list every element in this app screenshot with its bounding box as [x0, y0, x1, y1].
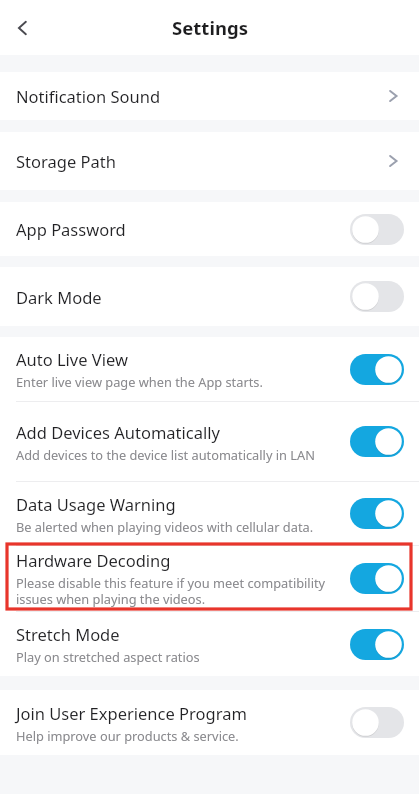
button[interactable]: Hardware Decoding	[0, 546, 419, 611]
button[interactable]: Join User Experience Program	[0, 690, 419, 755]
staticText: App Password	[16, 218, 126, 240]
staticText: Auto Live View	[16, 348, 128, 370]
button[interactable]: On	[350, 426, 404, 457]
staticText: Play on stretched aspect ratios	[16, 648, 200, 665]
staticText: Enter live view page when the App starts…	[16, 373, 263, 390]
staticText: Be alerted when playing videos with cell…	[16, 518, 314, 535]
button[interactable]: Data Usage Warning	[0, 482, 419, 545]
button[interactable]: App Password	[0, 202, 419, 256]
staticText: Add Devices Automatically	[16, 421, 220, 443]
staticText: Join User Experience Program	[16, 702, 247, 724]
button[interactable]: Stretch Mode	[0, 612, 419, 676]
button[interactable]: Add Devices Automatically	[0, 402, 419, 481]
button[interactable]: On	[350, 354, 404, 385]
other: Open	[382, 150, 404, 172]
button[interactable]: On	[350, 629, 404, 660]
button[interactable]: On	[350, 498, 404, 529]
staticText: Add devices to the device list automatic…	[16, 446, 315, 463]
button[interactable]: Dark Mode	[0, 267, 419, 326]
other: Open	[382, 85, 404, 107]
staticText: Data Usage Warning	[16, 493, 176, 515]
button[interactable]: On	[350, 563, 404, 594]
button[interactable]: Notification Sound	[0, 72, 419, 120]
button[interactable]: Auto Live View	[0, 337, 419, 401]
button[interactable]: Storage Path	[0, 132, 419, 190]
staticText: Stretch Mode	[16, 623, 120, 645]
button[interactable]: Off	[350, 214, 404, 245]
staticText: Please disable this feature if you meet …	[16, 574, 340, 608]
staticText: Settings	[172, 15, 248, 40]
staticText: Help improve our products & service.	[16, 727, 239, 744]
button[interactable]: Off	[350, 707, 404, 738]
staticText: Storage Path	[16, 150, 116, 172]
staticText: Hardware Decoding	[16, 549, 171, 571]
button[interactable]: Back	[0, 5, 46, 51]
button[interactable]: Off	[350, 281, 404, 312]
staticText: Dark Mode	[16, 286, 102, 308]
staticText: Notification Sound	[16, 85, 161, 107]
